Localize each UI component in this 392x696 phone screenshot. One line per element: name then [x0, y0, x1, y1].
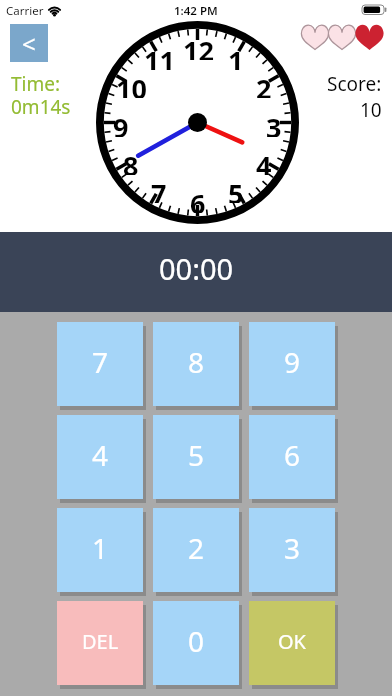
staticText: Score: — [327, 71, 382, 97]
button[interactable]: 7 — [57, 322, 143, 406]
staticText: Time: — [11, 71, 61, 97]
staticText: 3 — [284, 529, 301, 567]
staticText: 8 — [188, 343, 205, 381]
button[interactable]: 9 — [249, 322, 335, 406]
button[interactable]: 3 — [249, 508, 335, 592]
staticText: 1:42 PM — [174, 3, 218, 19]
staticText: OK — [278, 628, 306, 655]
staticText: 9 — [113, 109, 129, 137]
staticText: 6 — [284, 436, 301, 474]
staticText: 5 — [188, 436, 205, 474]
button[interactable]: 4 — [57, 415, 143, 499]
staticText: Carrier — [6, 3, 44, 19]
staticText: 11 — [144, 42, 175, 70]
staticText: 0 — [188, 622, 205, 660]
staticText: 10 — [360, 97, 382, 123]
staticText: < — [22, 27, 36, 60]
button[interactable]: OK — [249, 601, 335, 685]
button[interactable]: 8 — [153, 322, 239, 406]
staticText: 12 — [183, 32, 214, 60]
staticText: 7 — [92, 343, 109, 381]
staticText: 1 — [92, 529, 109, 567]
staticText: 8 — [123, 147, 139, 175]
staticText: 3 — [266, 109, 282, 137]
staticText: DEL — [82, 628, 119, 655]
staticText: 4 — [92, 436, 109, 474]
button[interactable]: 2 — [153, 508, 239, 592]
button[interactable]: 1 — [57, 508, 143, 592]
staticText: 0m14s — [11, 94, 71, 120]
staticText: 2 — [256, 70, 272, 98]
staticText: 2 — [188, 529, 205, 567]
staticText: 10 — [116, 70, 147, 98]
button[interactable]: 0 — [153, 601, 239, 685]
staticText: 7 — [151, 175, 167, 203]
staticText: 00:00 — [159, 249, 234, 288]
staticText: 6 — [190, 185, 206, 213]
button[interactable]: < — [10, 24, 48, 62]
staticText: 4 — [256, 147, 272, 175]
button[interactable]: DEL — [57, 601, 143, 685]
button[interactable]: 5 — [153, 415, 239, 499]
staticText: 1 — [228, 42, 244, 70]
staticText: 9 — [284, 343, 301, 381]
staticText: 5 — [228, 175, 244, 203]
button[interactable]: 6 — [249, 415, 335, 499]
